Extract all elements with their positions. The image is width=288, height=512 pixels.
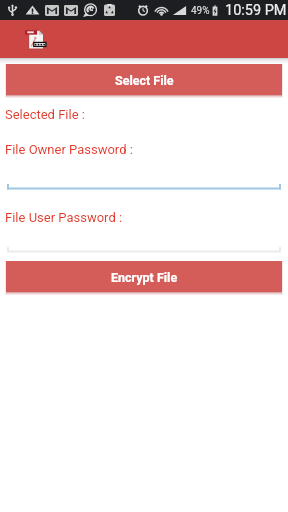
- staticText: Selected File :: [5, 107, 85, 122]
- staticText: 49%: [191, 5, 210, 17]
- staticText: Select File: [115, 73, 174, 88]
- staticText: File User Password :: [5, 210, 123, 225]
- staticText: File Owner Password :: [5, 142, 133, 157]
- staticText: Encrypt File: [111, 270, 178, 285]
- button[interactable]: Encrypt File: [6, 261, 282, 292]
- other: PDF Encrypt: [25, 30, 47, 49]
- button[interactable]: [0, 182, 288, 190]
- staticText: 10:59 PM: [225, 2, 287, 19]
- button[interactable]: [0, 245, 288, 253]
- button[interactable]: Select File: [6, 64, 282, 95]
